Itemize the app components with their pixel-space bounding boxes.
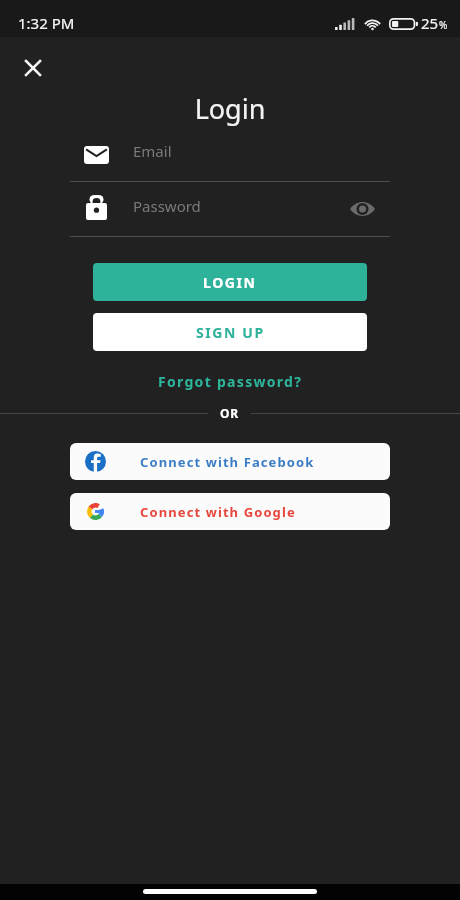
staticText: Connect with Facebook [140,453,315,471]
button[interactable]: Connect with Facebook [70,443,390,480]
button[interactable]: Close [13,48,53,88]
button[interactable]: Show password [347,194,377,224]
staticText: Forgot password? [158,372,303,391]
button[interactable]: LOGIN [93,263,367,301]
staticText: % [439,18,448,32]
staticText: SIGN UP [196,323,265,342]
staticText: LOGIN [203,273,257,292]
staticText: Email [133,141,390,161]
button[interactable]: SIGN UP [93,313,367,351]
button[interactable]: Connect with Google [70,493,390,530]
button[interactable]: Forgot password? [0,367,460,396]
staticText: Login [0,90,460,127]
staticText: 25 [421,13,439,33]
staticText: OR [220,405,239,421]
staticText: Connect with Google [140,503,296,521]
staticText: 1:32 PM [18,13,75,33]
staticText: Password [133,196,360,216]
